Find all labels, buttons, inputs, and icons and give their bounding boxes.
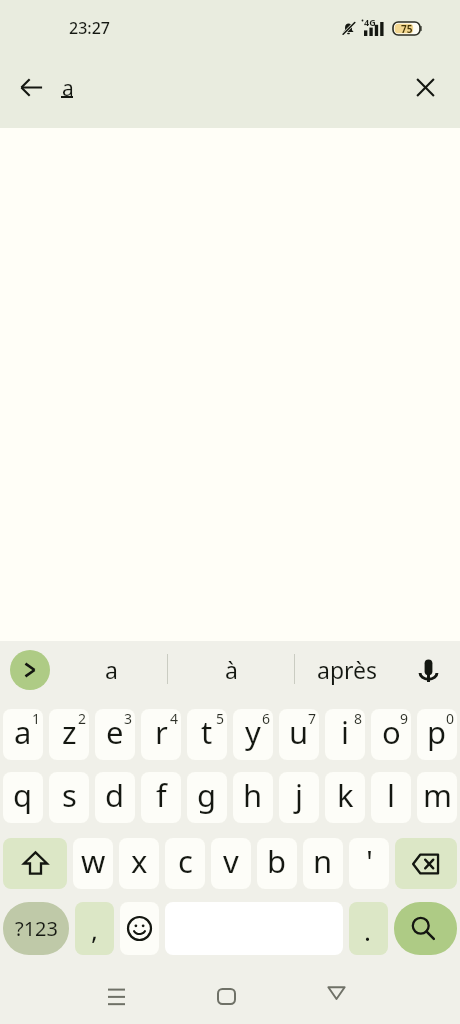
- button[interactable]: b: [257, 838, 297, 889]
- button[interactable]: r: [141, 709, 181, 760]
- staticText: z: [62, 711, 77, 753]
- staticText: ,: [91, 912, 98, 947]
- button[interactable]: p: [417, 709, 457, 760]
- staticText: 4: [170, 709, 179, 728]
- button[interactable]: Search: [394, 902, 457, 955]
- staticText: 1: [32, 709, 41, 728]
- staticText: r: [155, 711, 168, 753]
- staticText: o: [382, 711, 401, 753]
- staticText: c: [178, 840, 193, 882]
- staticText: 7: [308, 709, 317, 728]
- staticText: w: [81, 840, 106, 882]
- button[interactable]: ,: [75, 902, 114, 955]
- button[interactable]: j: [279, 772, 319, 823]
- staticText: a: [105, 654, 118, 685]
- staticText: p: [427, 711, 447, 753]
- button[interactable]: e: [95, 709, 135, 760]
- button[interactable]: f: [141, 772, 181, 823]
- staticText: x: [131, 840, 148, 882]
- button[interactable]: ?123: [3, 902, 69, 955]
- button[interactable]: Backspace: [395, 838, 457, 889]
- staticText: 8: [354, 709, 363, 728]
- staticText: v: [223, 840, 239, 882]
- button[interactable]: c: [165, 838, 205, 889]
- staticText: h: [243, 774, 263, 816]
- button[interactable]: t: [187, 709, 227, 760]
- staticText: a: [62, 74, 74, 103]
- staticText: 0: [446, 709, 455, 728]
- staticText: u: [289, 711, 309, 753]
- staticText: d: [105, 774, 125, 816]
- button[interactable]: Back: [306, 963, 366, 1023]
- staticText: y: [245, 711, 261, 753]
- button[interactable]: w: [73, 838, 113, 889]
- staticText: 4G: [364, 16, 376, 28]
- staticText: 75: [401, 22, 413, 35]
- button[interactable]: à: [168, 641, 294, 697]
- button[interactable]: More suggestions: [10, 650, 50, 690]
- staticText: .: [364, 913, 371, 948]
- staticText: q: [13, 774, 33, 816]
- button[interactable]: Back: [7, 63, 55, 111]
- button[interactable]: k: [325, 772, 365, 823]
- staticText: 6: [262, 709, 271, 728]
- button[interactable]: y: [233, 709, 273, 760]
- button[interactable]: .: [349, 902, 388, 955]
- staticText: 3: [124, 709, 133, 728]
- staticText: j: [295, 774, 303, 816]
- staticText: ?123: [15, 915, 58, 942]
- button[interactable]: a: [55, 641, 167, 697]
- staticText: a: [14, 711, 32, 753]
- staticText: à: [225, 654, 238, 685]
- button[interactable]: a: [3, 709, 43, 760]
- button[interactable]: Clear: [401, 63, 449, 111]
- staticText: m: [423, 774, 452, 816]
- button[interactable]: s: [49, 772, 89, 823]
- staticText: g: [197, 774, 217, 816]
- button[interactable]: l: [371, 772, 411, 823]
- button[interactable]: Emoji: [120, 902, 159, 955]
- staticText: f: [156, 774, 167, 816]
- button[interactable]: h: [233, 772, 273, 823]
- staticText: après: [317, 654, 378, 685]
- button[interactable]: Recents: [86, 966, 146, 1024]
- button[interactable]: Voice input: [405, 647, 451, 693]
- button[interactable]: u: [279, 709, 319, 760]
- button[interactable]: g: [187, 772, 227, 823]
- staticText: b: [267, 840, 287, 882]
- button[interactable]: m: [417, 772, 457, 823]
- button[interactable]: après: [295, 641, 400, 697]
- staticText: t: [201, 711, 213, 753]
- staticText: k: [337, 774, 354, 816]
- staticText: l: [387, 774, 395, 816]
- staticText: n: [313, 840, 333, 882]
- staticText: s: [62, 774, 77, 816]
- staticText: ': [366, 840, 373, 882]
- button[interactable]: i: [325, 709, 365, 760]
- staticText: 2: [78, 709, 87, 728]
- button[interactable]: Home: [196, 966, 256, 1024]
- staticText: 5: [216, 709, 225, 728]
- button[interactable]: d: [95, 772, 135, 823]
- button[interactable]: x: [119, 838, 159, 889]
- button[interactable]: n: [303, 838, 343, 889]
- button[interactable]: ': [349, 838, 389, 889]
- button[interactable]: v: [211, 838, 251, 889]
- staticText: 9: [400, 709, 409, 728]
- button[interactable]: z: [49, 709, 89, 760]
- button[interactable]: q: [3, 772, 43, 823]
- staticText: e: [106, 711, 124, 753]
- staticText: i: [341, 711, 349, 753]
- button[interactable]: Shift: [3, 838, 67, 889]
- button[interactable]: o: [371, 709, 411, 760]
- staticText: 23:27: [69, 17, 110, 39]
